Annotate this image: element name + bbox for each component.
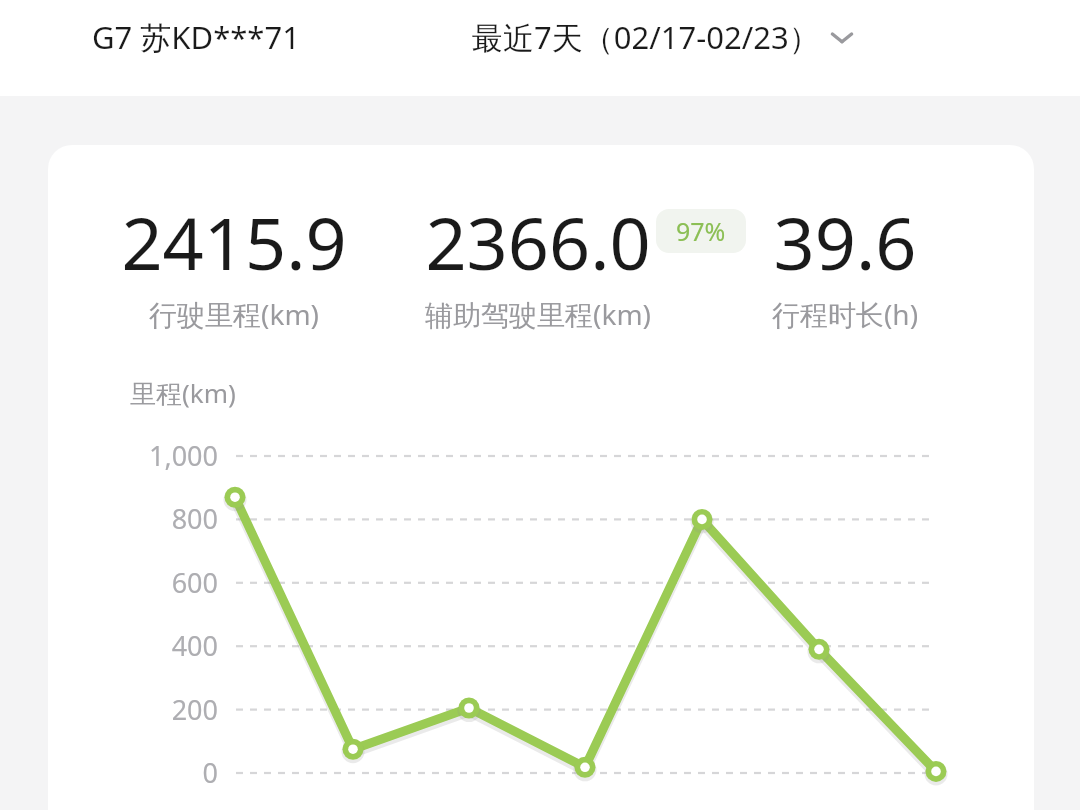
staticText: 97% bbox=[676, 214, 726, 248]
other: Change date range bbox=[824, 19, 860, 55]
staticText: 行驶里程(km) bbox=[48, 295, 474, 333]
staticText: 2415.9 bbox=[48, 193, 474, 291]
button[interactable]: 97% bbox=[656, 209, 746, 253]
staticText: 2366.0 bbox=[298, 193, 778, 291]
staticText: 0 bbox=[48, 754, 218, 791]
staticText: 最近7天（02/17-02/23） bbox=[472, 16, 820, 58]
staticText: 200 bbox=[48, 691, 218, 728]
button[interactable]: 2366.0 bbox=[298, 193, 778, 333]
staticText: 400 bbox=[48, 627, 218, 664]
button[interactable]: 2415.9 bbox=[48, 193, 474, 333]
staticText: 600 bbox=[48, 564, 218, 601]
staticText: 800 bbox=[48, 500, 218, 537]
button[interactable]: 39.6 bbox=[605, 193, 1034, 333]
button[interactable]: G7 苏KD***71 bbox=[92, 16, 300, 58]
staticText: 里程(km) bbox=[130, 375, 236, 411]
staticText: 39.6 bbox=[605, 193, 1034, 291]
staticText: 辅助驾驶里程(km) bbox=[298, 295, 778, 333]
staticText: 1,000 bbox=[48, 437, 218, 474]
button[interactable]: 最近7天（02/17-02/23） bbox=[472, 16, 860, 58]
staticText: 行程时长(h) bbox=[605, 295, 1034, 333]
